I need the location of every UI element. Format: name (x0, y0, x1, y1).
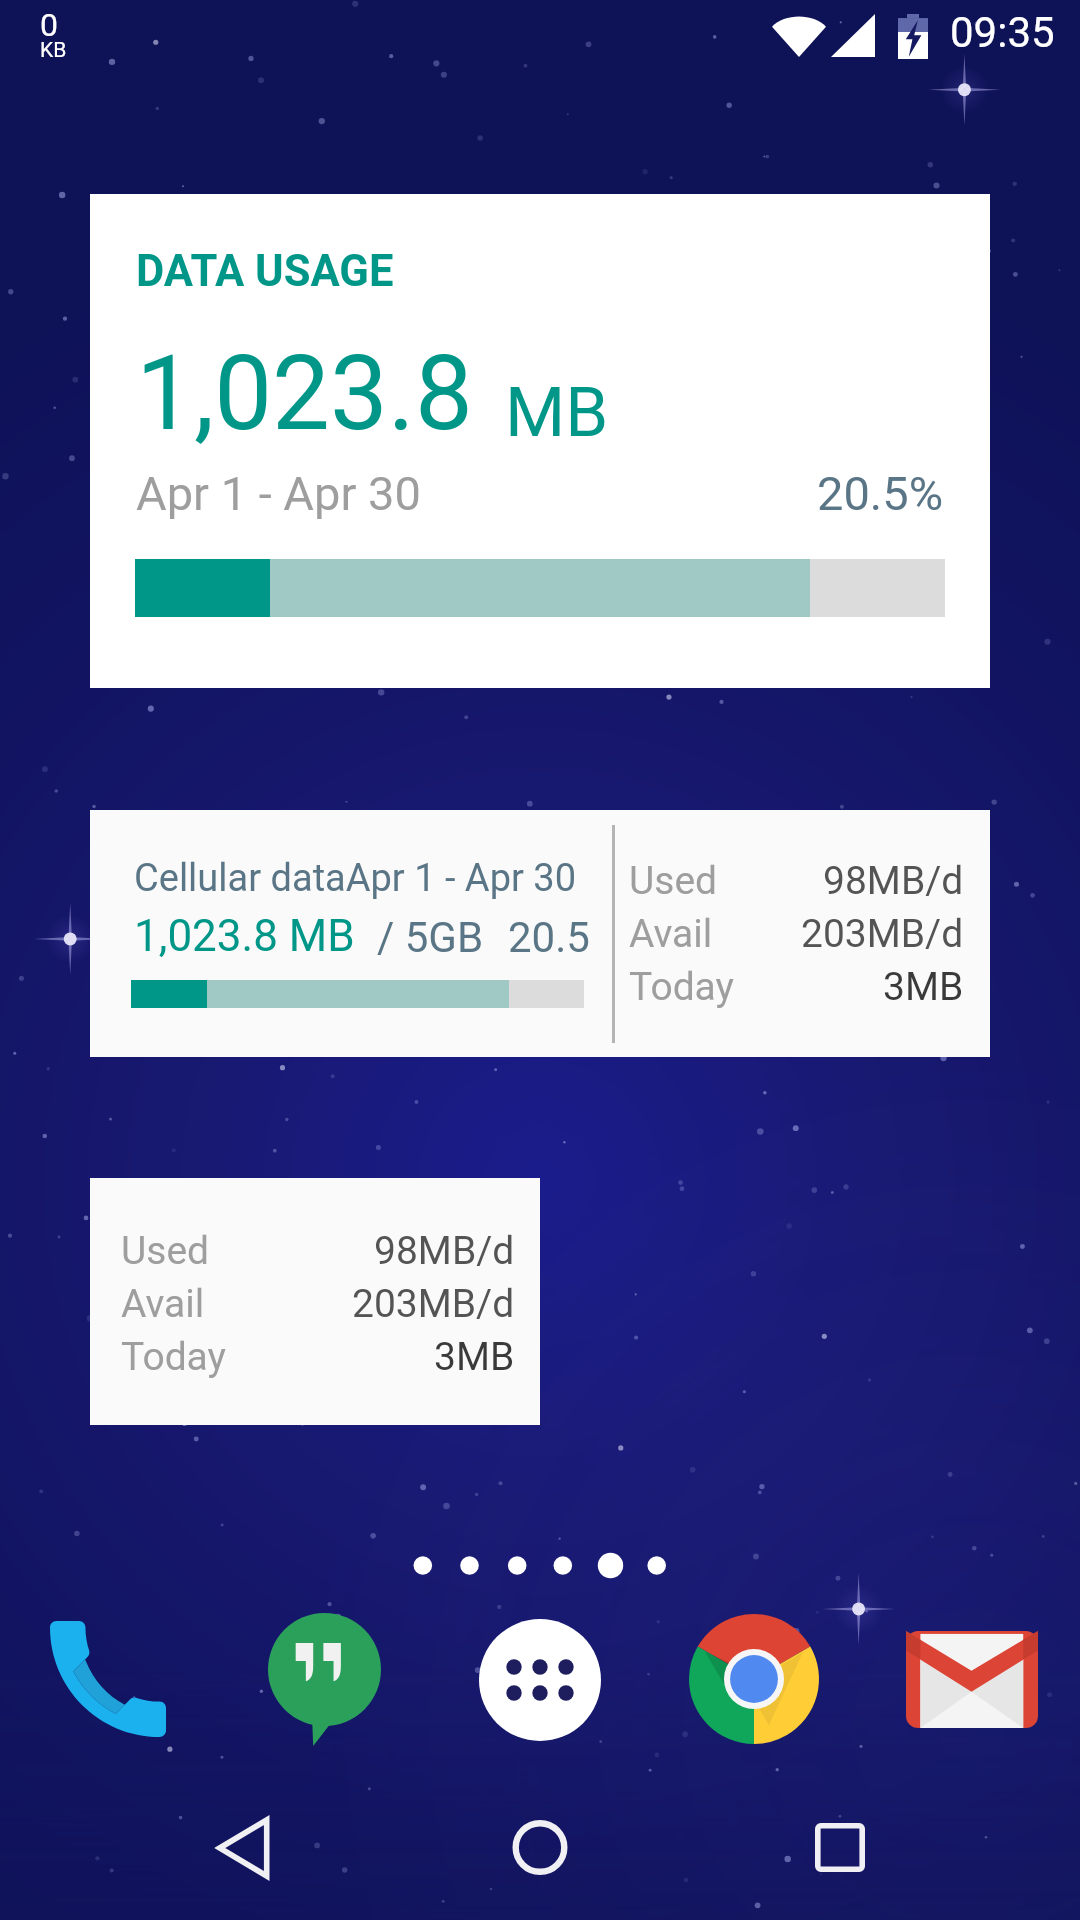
staticText: 20.5 (508, 913, 590, 962)
staticText: 1,023.8 (136, 333, 473, 454)
staticText: 1,023.8 MB (134, 910, 355, 962)
staticText: 20.5% (817, 466, 944, 521)
staticText: / 5GB (377, 913, 484, 962)
button[interactable]: Cellular dataApr 1 - Apr 30 (90, 810, 990, 1057)
staticText: Today (121, 1334, 227, 1380)
staticText: 3MB (883, 964, 964, 1010)
button[interactable]: Hangouts (244, 1600, 404, 1760)
staticText: Avail (629, 911, 713, 957)
staticText: 09:35 (950, 8, 1055, 57)
button[interactable]: Used (90, 1178, 540, 1425)
staticText: Used (121, 1228, 210, 1274)
button[interactable]: Back (180, 1788, 300, 1908)
staticText: 98MB/d (374, 1228, 515, 1274)
staticText: KB (40, 38, 67, 63)
button[interactable]: Phone (28, 1600, 188, 1760)
staticText: 98MB/d (823, 858, 964, 904)
staticText: 203MB/d (352, 1281, 515, 1327)
staticText: Used (629, 858, 718, 904)
staticText: Avail (121, 1281, 205, 1327)
button[interactable]: DATA USAGE (90, 194, 990, 688)
staticText: 3MB (434, 1334, 515, 1380)
staticText: 203MB/d (801, 911, 964, 957)
staticText: MB (505, 372, 609, 453)
staticText: DATA USAGE (136, 246, 394, 297)
staticText: 0 (40, 6, 58, 44)
staticText: Today (629, 964, 735, 1010)
staticText: Apr 1 - Apr 30 (136, 466, 421, 521)
button[interactable]: Apps (460, 1600, 620, 1760)
button[interactable]: Home (480, 1788, 600, 1908)
button[interactable]: Recents (780, 1788, 900, 1908)
staticText: Cellular dataApr 1 - Apr 30 (134, 856, 577, 901)
button[interactable]: Gmail (892, 1600, 1052, 1760)
button[interactable]: Chrome (674, 1600, 834, 1760)
